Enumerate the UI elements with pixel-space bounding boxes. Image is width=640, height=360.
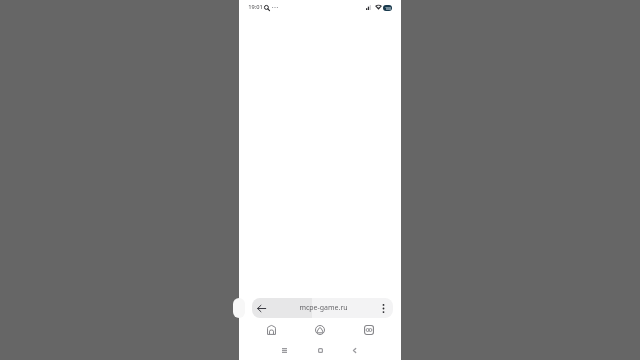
button[interactable]: More options (373, 298, 393, 318)
staticText: mcpe-game.ru (299, 303, 348, 313)
staticText: 19:01 (248, 3, 263, 11)
button[interactable]: Search (264, 5, 270, 11)
button[interactable]: Back (343, 339, 365, 360)
button[interactable]: Home (309, 339, 331, 360)
button[interactable]: Tabs (358, 319, 380, 341)
staticText: 100 (385, 6, 391, 10)
button[interactable]: Recents (273, 339, 295, 360)
button[interactable] (252, 298, 393, 318)
button[interactable]: Assistant (309, 319, 331, 341)
button[interactable]: Home (260, 319, 282, 341)
button[interactable]: Back (250, 298, 273, 318)
